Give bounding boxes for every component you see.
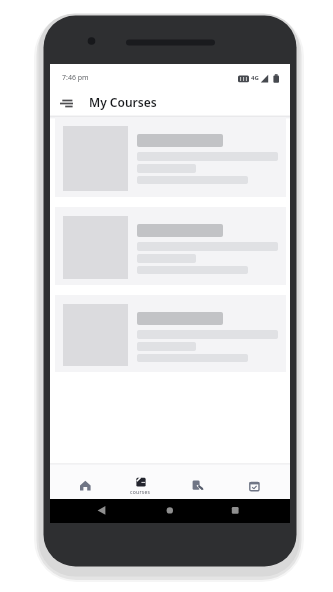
button[interactable]	[222, 501, 254, 521]
button[interactable]	[86, 501, 118, 521]
button[interactable]	[56, 93, 78, 113]
button[interactable]	[55, 117, 286, 197]
button[interactable]	[55, 295, 286, 372]
staticText: 7:46 pm	[62, 73, 89, 83]
button[interactable]	[55, 207, 286, 285]
button[interactable]	[230, 464, 278, 499]
button[interactable]	[62, 464, 110, 499]
button[interactable]	[174, 464, 222, 499]
staticText: courses	[130, 489, 151, 496]
button[interactable]: courses	[116, 462, 165, 499]
staticText: My Courses	[89, 94, 157, 110]
staticText: 4G	[251, 74, 259, 82]
button[interactable]	[154, 501, 186, 521]
